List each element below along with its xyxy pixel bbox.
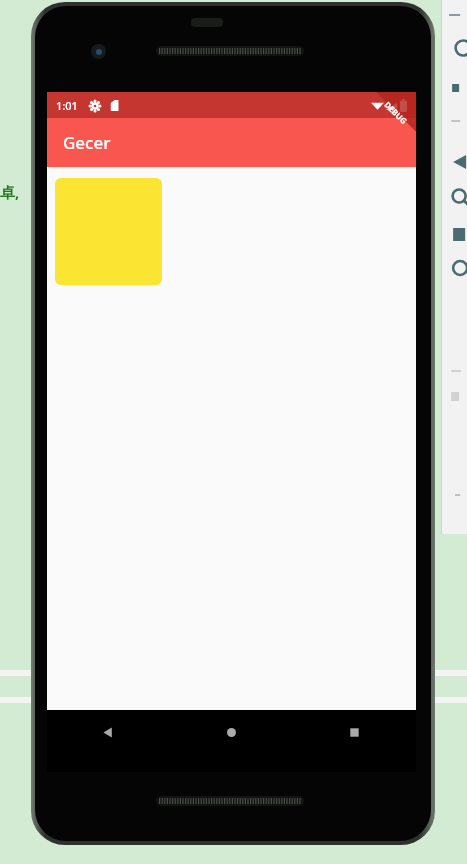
staticText: Gecer [63,131,111,154]
button[interactable]: Back [47,710,170,754]
staticText: 卓, [0,182,20,202]
staticText: 1:01 [56,98,78,113]
button[interactable] [55,178,162,285]
button[interactable]: Home [170,710,293,754]
staticText: DEBUG [382,99,410,126]
button[interactable]: Recents [293,710,416,754]
